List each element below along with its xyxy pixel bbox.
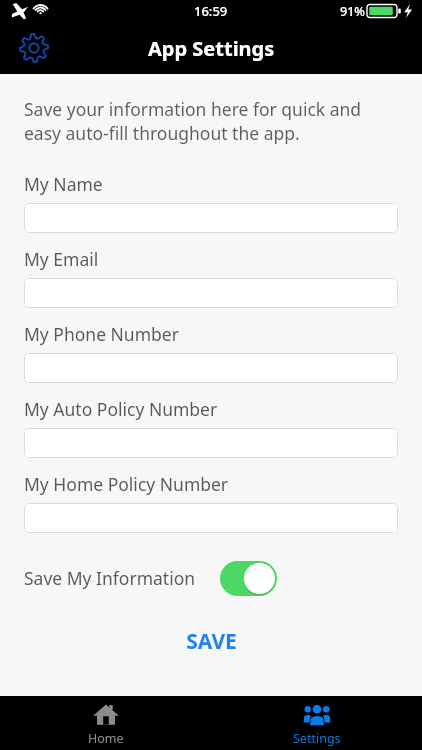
- staticText: Home: [88, 730, 124, 747]
- staticText: Save My Information: [24, 566, 196, 590]
- button[interactable]: [24, 203, 398, 233]
- staticText: Save your information here for quick and…: [24, 97, 398, 145]
- button[interactable]: Settings: [14, 28, 54, 68]
- button[interactable]: [24, 278, 398, 308]
- staticText: My Home Policy Number: [24, 472, 229, 496]
- button[interactable]: Save My Information toggle, on: [220, 561, 277, 596]
- staticText: Settings: [293, 730, 341, 747]
- staticText: My Name: [24, 172, 103, 196]
- button[interactable]: SAVE: [170, 621, 253, 662]
- staticText: My Email: [24, 247, 99, 271]
- button[interactable]: Settings: [211, 696, 422, 750]
- button[interactable]: Home: [0, 696, 211, 750]
- staticText: My Auto Policy Number: [24, 397, 218, 421]
- staticText: App Settings: [148, 35, 275, 62]
- staticText: 91%: [340, 3, 365, 20]
- staticText: 16:59: [194, 2, 228, 20]
- button[interactable]: [24, 353, 398, 383]
- staticText: My Phone Number: [24, 322, 179, 346]
- staticText: SAVE: [186, 627, 237, 656]
- button[interactable]: [24, 428, 398, 458]
- button[interactable]: [24, 503, 398, 533]
